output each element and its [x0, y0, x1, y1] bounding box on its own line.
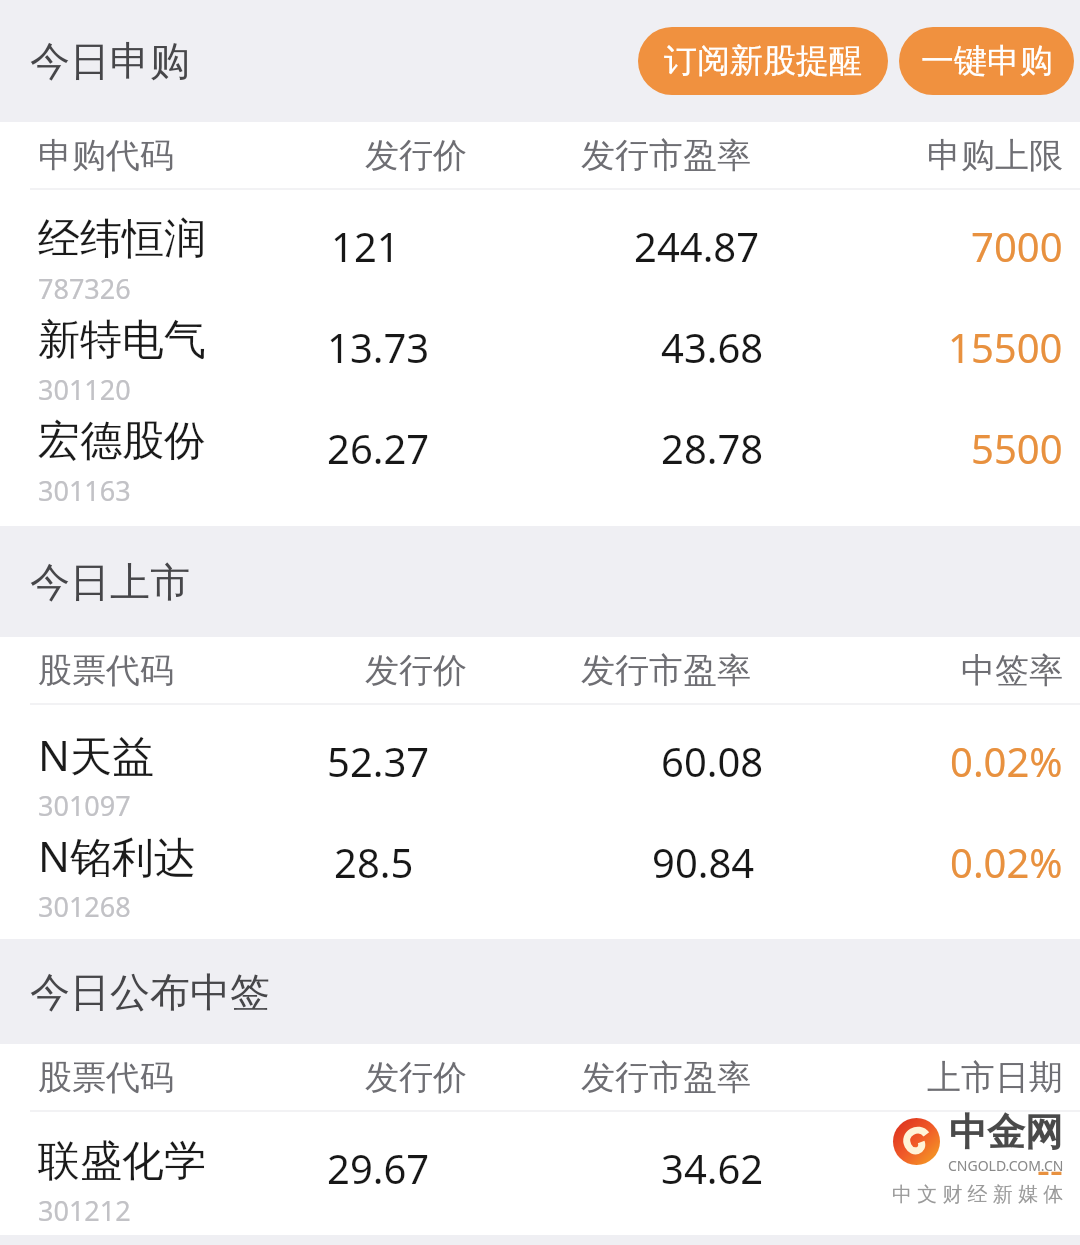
staticText: 60.08 [661, 734, 764, 788]
staticText: 发行市盈率 [581, 134, 751, 177]
staticText: 301268 [38, 888, 131, 925]
staticText: 发行价 [365, 649, 467, 692]
staticText: 13.73 [327, 320, 430, 374]
staticText: 7000 [971, 219, 1063, 273]
staticText: -- [1037, 1141, 1063, 1195]
staticText: 新特电气 [38, 314, 206, 367]
staticText: 43.68 [661, 320, 764, 374]
staticText: 宏德股份 [38, 415, 206, 468]
staticText: 一键申购 [921, 40, 1053, 82]
staticText: 0.02% [950, 835, 1063, 889]
staticText: 中金网 [949, 1108, 1063, 1156]
staticText: N铭利达 [38, 827, 196, 884]
staticText: 股票代码 [38, 1056, 174, 1099]
button[interactable]: 联盛化学 [0, 1134, 1080, 1235]
button[interactable]: 新特电气 [0, 313, 1080, 414]
staticText: 申购上限 [927, 134, 1063, 177]
staticText: 301163 [38, 472, 131, 509]
staticText: 34.62 [661, 1141, 764, 1195]
button[interactable]: 宏德股份 [0, 414, 1080, 515]
staticText: 股票代码 [38, 649, 174, 692]
button[interactable]: 经纬恒润 [0, 212, 1080, 313]
button[interactable]: 订阅新股提醒 [638, 27, 888, 95]
staticText: 发行市盈率 [581, 649, 751, 692]
staticText: 中 文 财 经 新 媒 体 [892, 1180, 1064, 1207]
staticText: 121 [331, 219, 400, 273]
button[interactable]: 一键申购 [899, 27, 1074, 95]
staticText: 今日上市 [30, 557, 190, 607]
staticText: 301212 [38, 1192, 131, 1229]
button[interactable]: N天益 [0, 727, 1080, 828]
button[interactable]: N铭利达 [0, 828, 1080, 929]
staticText: 联盛化学 [38, 1135, 206, 1188]
staticText: 今日公布中签 [30, 967, 270, 1017]
staticText: 244.87 [634, 219, 760, 273]
staticText: N天益 [38, 726, 154, 783]
staticText: 中签率 [961, 649, 1063, 692]
staticText: 29.67 [327, 1141, 430, 1195]
staticText: 28.78 [661, 421, 764, 475]
staticText: 申购代码 [38, 134, 174, 177]
staticText: 787326 [38, 270, 131, 307]
staticText: 5500 [971, 421, 1063, 475]
staticText: 0.02% [950, 734, 1063, 788]
staticText: 今日申购 [30, 36, 190, 86]
staticText: 订阅新股提醒 [664, 40, 862, 82]
staticText: 301097 [38, 787, 131, 824]
staticText: 26.27 [327, 421, 430, 475]
staticText: 301120 [38, 371, 131, 408]
staticText: 28.5 [334, 835, 414, 889]
staticText: 90.84 [652, 835, 755, 889]
staticText: 经纬恒润 [38, 213, 206, 266]
staticText: 发行市盈率 [581, 1056, 751, 1099]
staticText: 发行价 [365, 134, 467, 177]
staticText: 发行价 [365, 1056, 467, 1099]
staticText: 上市日期 [927, 1056, 1063, 1099]
staticText: 52.37 [327, 734, 430, 788]
staticText: 15500 [948, 320, 1063, 374]
staticText: CNGOLD.COM.CN [948, 1156, 1064, 1175]
